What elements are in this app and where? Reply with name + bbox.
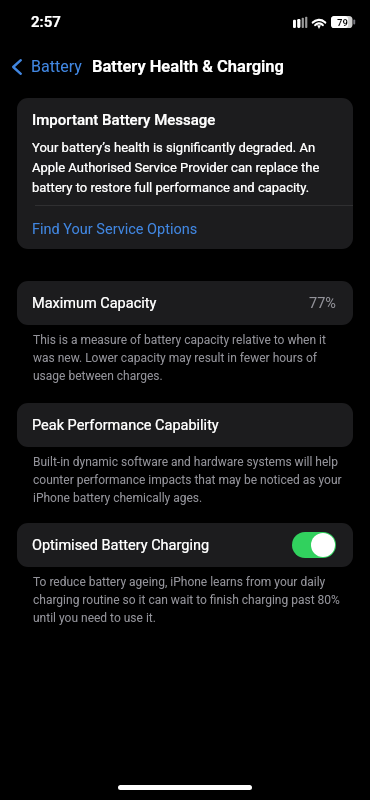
button[interactable]: Maximum Capacity [17,281,353,325]
staticText: Optimised Battery Charging [32,537,210,554]
button[interactable]: Peak Performance Capability [17,403,353,447]
staticText: To reduce battery ageing, iPhone learns … [33,571,345,625]
staticText: Battery Health & Charging [92,57,284,76]
staticText: Battery [31,57,82,76]
staticText: 79 [337,17,348,28]
staticText: Find Your Service Options [32,221,198,238]
button[interactable]: Find Your Service Options [17,206,353,249]
button[interactable]: Optimised Battery Charging [17,523,353,567]
staticText: Built-in dynamic software and hardware s… [33,451,345,505]
staticText: 2:57 [31,13,61,31]
staticText: Maximum Capacity [32,295,157,312]
staticText: This is a measure of battery capacity re… [33,329,345,383]
staticText: Peak Performance Capability [32,417,219,434]
staticText: Your battery’s health is significantly d… [32,136,338,196]
button[interactable]: Back to Battery [0,51,90,82]
staticText: Important Battery Message [32,111,216,129]
button[interactable]: Optimised Battery Charging [292,532,336,558]
staticText: 77% [309,295,336,312]
